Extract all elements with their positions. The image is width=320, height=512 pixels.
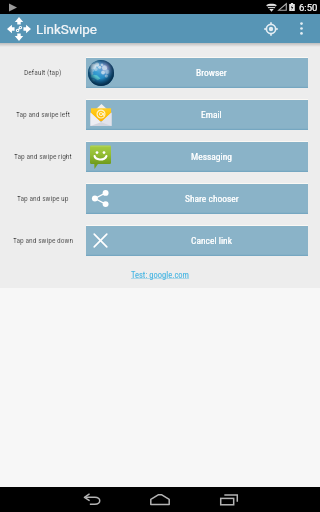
button[interactable]: Share chooser: [86, 183, 308, 214]
button[interactable]: Cancel link: [86, 225, 308, 256]
button[interactable]: Recent apps: [205, 487, 253, 512]
staticText: Share chooser: [185, 193, 239, 204]
staticText: Default (tap): [24, 68, 62, 77]
staticText: Tap and swipe left: [16, 110, 70, 119]
staticText: LinkSwipe: [36, 21, 98, 37]
staticText: Tap and swipe down: [13, 236, 74, 245]
button[interactable]: Home: [136, 487, 184, 512]
staticText: Browser: [196, 67, 227, 78]
staticText: Tap and swipe right: [14, 152, 72, 161]
button[interactable]: Email: [86, 99, 308, 130]
button[interactable]: Back: [68, 487, 116, 512]
staticText: Messaging: [191, 151, 232, 162]
staticText: Tap and swipe up: [17, 194, 69, 203]
button[interactable]: Test: google.com: [127, 269, 194, 281]
staticText: Cancel link: [191, 235, 232, 246]
button[interactable]: Detect link: [252, 14, 290, 43]
staticText: Email: [201, 109, 222, 120]
staticText: 6:50: [299, 2, 318, 13]
button[interactable]: More options: [290, 14, 313, 43]
button[interactable]: Messaging: [86, 141, 308, 172]
button[interactable]: Browser: [86, 57, 308, 88]
